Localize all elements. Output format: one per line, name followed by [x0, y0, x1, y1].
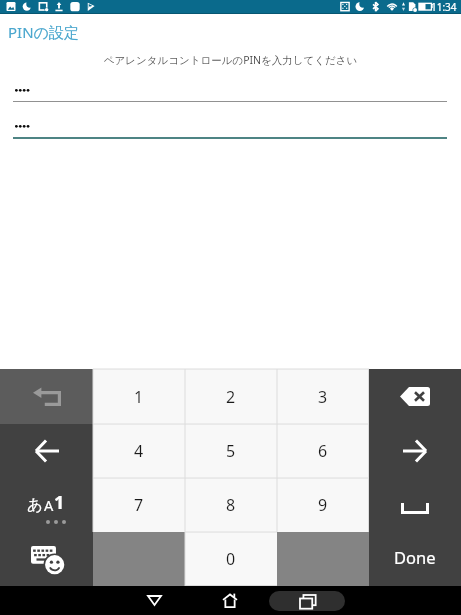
staticText: A — [44, 495, 54, 515]
staticText: 4 — [134, 440, 144, 462]
staticText: 1 — [134, 386, 144, 408]
button[interactable]: 5 — [185, 424, 277, 478]
button[interactable]: Change language — [0, 478, 93, 532]
button[interactable]: 6 — [277, 424, 369, 478]
button[interactable]: Backspace — [369, 369, 461, 424]
button[interactable]: Done — [369, 532, 461, 586]
button[interactable]: 4 — [93, 424, 185, 478]
button[interactable]: Tab — [0, 369, 93, 424]
staticText: Done — [394, 546, 436, 568]
button[interactable]: 7 — [93, 478, 185, 532]
staticText: 0 — [226, 548, 236, 570]
staticText: PINの設定 — [8, 22, 79, 42]
button[interactable]: 2 — [185, 369, 277, 424]
staticText: あ — [27, 495, 43, 515]
staticText: 8 — [226, 494, 236, 516]
button[interactable]: 0 — [185, 532, 277, 586]
button[interactable]: 8 — [185, 478, 277, 532]
button[interactable]: 9 — [277, 478, 369, 532]
staticText: 2 — [226, 386, 236, 408]
staticText: 6 — [318, 440, 328, 462]
button[interactable]: 1 — [93, 369, 185, 424]
staticText: 3 — [318, 386, 328, 408]
staticText: 11:34 — [431, 0, 457, 14]
button[interactable]: blank — [93, 532, 185, 586]
button[interactable]: Move left — [0, 424, 93, 478]
staticText: 9 — [318, 494, 328, 516]
button[interactable]: 3 — [277, 369, 369, 424]
staticText: 5 — [226, 440, 236, 462]
staticText: 1 — [54, 490, 65, 515]
button[interactable]: Back — [134, 586, 174, 615]
staticText: ペアレンタルコントロールのPINを入力してください — [0, 53, 461, 67]
button[interactable]: Move right — [369, 424, 461, 478]
button[interactable]: Emoji keyboard — [0, 532, 93, 586]
button[interactable]: Space — [369, 478, 461, 532]
button[interactable]: Recent apps — [269, 591, 345, 611]
staticText: 7 — [134, 494, 144, 516]
button[interactable]: Home — [210, 586, 250, 615]
